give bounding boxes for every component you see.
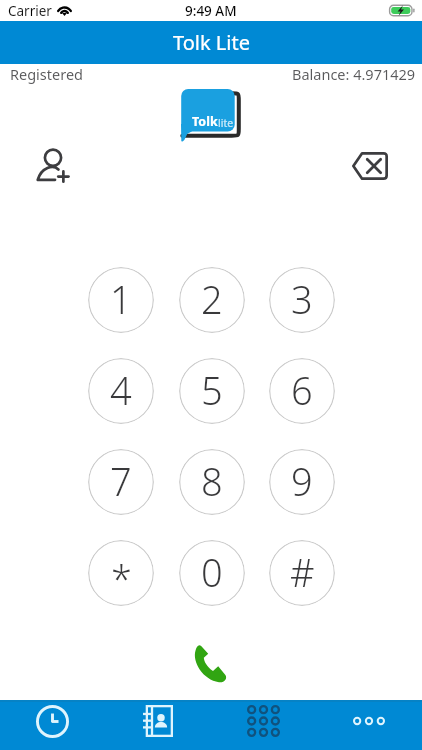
button[interactable]: 2	[179, 267, 245, 333]
staticText: Carrier	[8, 2, 52, 20]
button[interactable]: 7	[88, 449, 154, 515]
button[interactable]: 6	[269, 358, 335, 424]
staticText: 4	[110, 364, 132, 416]
staticText: #	[290, 546, 315, 598]
button[interactable]: 9	[269, 449, 335, 515]
button[interactable]: #	[269, 540, 335, 606]
staticText: 1	[110, 273, 132, 325]
staticText: 5	[201, 364, 223, 416]
button[interactable]: 0	[179, 540, 245, 606]
button[interactable]: 5	[179, 358, 245, 424]
staticText: Tolk Lite	[173, 29, 250, 56]
button[interactable]: 8	[179, 449, 245, 515]
staticText: 7	[110, 455, 132, 507]
staticText: 8	[201, 455, 223, 507]
button[interactable]: 1	[88, 267, 154, 333]
staticText: *	[111, 552, 132, 604]
staticText: Registered	[10, 64, 84, 84]
button[interactable]: Backspace	[344, 141, 394, 191]
button[interactable]: *	[88, 540, 154, 606]
button[interactable]: Keypad	[210, 700, 316, 750]
button[interactable]: 3	[269, 267, 335, 333]
staticText: 3	[291, 273, 313, 325]
staticText: Tolk	[192, 113, 218, 130]
staticText: 9	[291, 455, 313, 507]
button[interactable]: More	[316, 700, 422, 750]
staticText: 0	[201, 546, 223, 598]
staticText: 2	[201, 273, 223, 325]
button[interactable]: Call	[183, 635, 239, 691]
staticText: Balance: 4.971429	[292, 64, 416, 84]
staticText: 6	[291, 364, 313, 416]
button[interactable]: Add contact	[28, 141, 78, 191]
staticText: lite	[218, 116, 234, 130]
button[interactable]: Contacts	[105, 700, 210, 750]
button[interactable]: Recents	[0, 700, 105, 750]
button[interactable]: 4	[88, 358, 154, 424]
staticText: 9:49 AM	[185, 2, 237, 20]
